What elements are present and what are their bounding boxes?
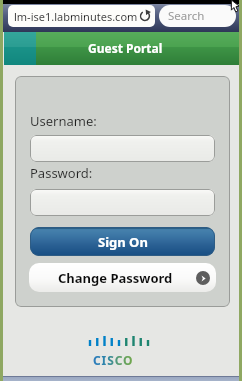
other: Cursor (228, 0, 241, 13)
staticText: Guest Portal (88, 40, 163, 56)
staticText: Password: (30, 164, 93, 182)
staticText: lm-ise1.labminutes.com (14, 9, 138, 24)
button[interactable]: Reload (138, 9, 152, 23)
button[interactable]: Search (159, 5, 236, 27)
button[interactable] (30, 135, 215, 162)
staticText: CISCO (93, 352, 134, 368)
staticText: Sign On (98, 233, 148, 251)
staticText: Change Password (58, 269, 173, 287)
button[interactable]: lm-ise1.labminutes.com (8, 5, 155, 27)
staticText: Search (168, 8, 205, 24)
button[interactable] (30, 189, 215, 216)
staticText: Username: (30, 112, 97, 130)
button[interactable]: Sign On (30, 227, 215, 256)
other: More options (196, 271, 210, 285)
button[interactable]: Change Password (29, 263, 216, 292)
